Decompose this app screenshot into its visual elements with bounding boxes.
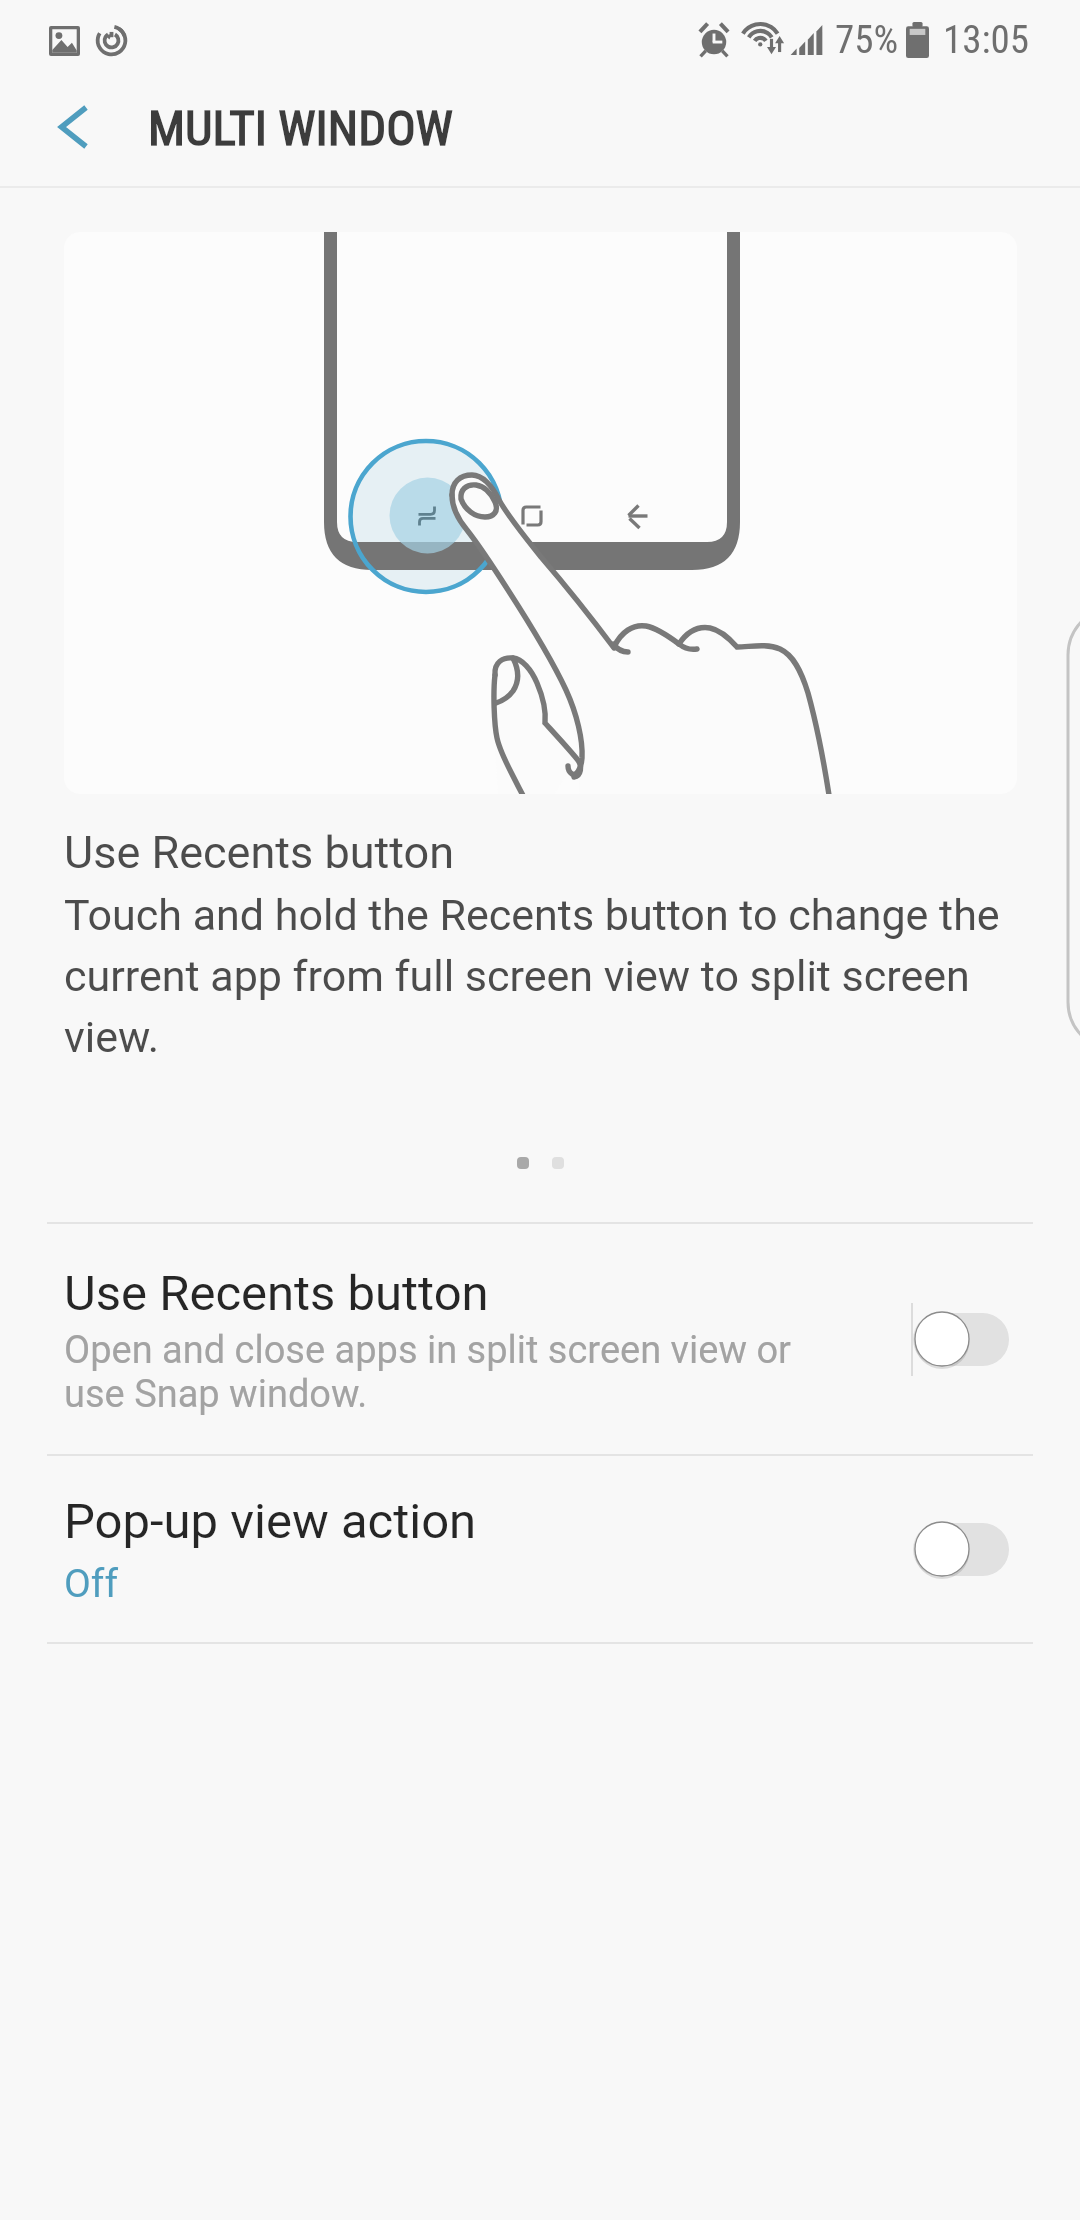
staticText: Use Recents button <box>64 1265 489 1322</box>
staticText: MULTI WINDOW <box>148 100 453 157</box>
button[interactable]: Use Recents button <box>0 1223 1080 1455</box>
staticText: Touch and hold the Recents button to cha… <box>64 890 1000 1063</box>
button[interactable]: Toggle Use Recents button <box>913 1310 1009 1368</box>
staticText: Use Recents button <box>64 826 454 879</box>
staticText: Off <box>64 1561 118 1607</box>
staticText: 75% <box>835 17 899 63</box>
staticText: Pop-up view action <box>64 1493 477 1550</box>
staticText: Open and close apps in split screen view… <box>64 1328 791 1416</box>
button[interactable]: Toggle Pop-up view action <box>913 1520 1009 1578</box>
staticText: 13:05 <box>943 17 1030 63</box>
button[interactable]: Pop-up view action <box>0 1455 1080 1643</box>
button[interactable]: Navigate up <box>0 80 142 186</box>
